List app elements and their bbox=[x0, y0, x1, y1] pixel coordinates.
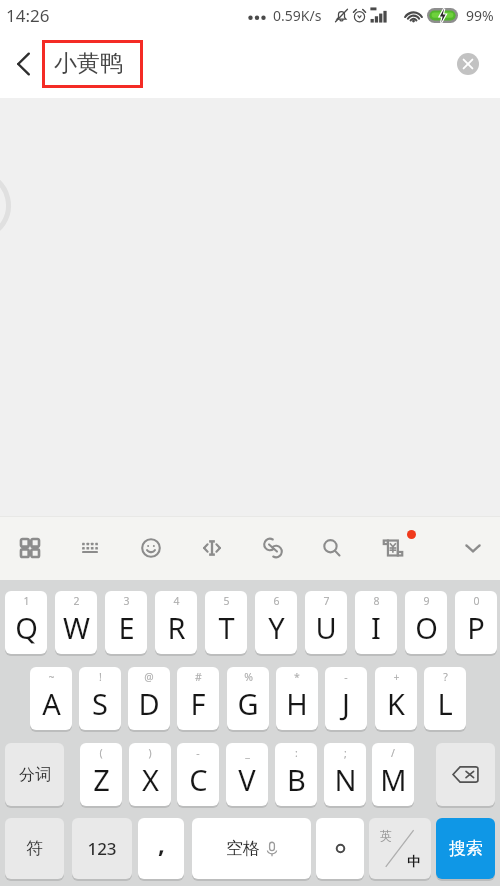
button[interactable]: Translate bbox=[370, 516, 416, 580]
staticText: + bbox=[393, 670, 400, 684]
staticText: * bbox=[294, 670, 300, 684]
button[interactable]: 0 bbox=[455, 591, 497, 654]
button[interactable]: 空格 bbox=[192, 818, 311, 879]
button[interactable]: : bbox=[275, 743, 317, 806]
staticText: E bbox=[118, 608, 135, 647]
staticText: I bbox=[371, 608, 381, 647]
staticText: - bbox=[344, 670, 348, 684]
button[interactable]: 2 bbox=[55, 591, 97, 654]
staticText: ; bbox=[344, 746, 347, 760]
staticText: L bbox=[437, 684, 453, 723]
staticText: 99% bbox=[466, 6, 494, 25]
staticText: % bbox=[244, 670, 253, 684]
button[interactable]: Back bbox=[2, 42, 46, 86]
staticText: O bbox=[415, 608, 438, 647]
button[interactable]: + bbox=[375, 667, 417, 730]
staticText: M bbox=[380, 760, 407, 799]
button[interactable]: 分词 bbox=[5, 743, 64, 806]
staticText: @ bbox=[144, 670, 154, 684]
staticText: , bbox=[158, 827, 165, 860]
staticText: : bbox=[295, 746, 298, 760]
button[interactable]: Switch English Chinese bbox=[369, 818, 431, 879]
staticText: 3 bbox=[123, 594, 130, 608]
staticText: ! bbox=[99, 670, 102, 684]
staticText: T bbox=[218, 608, 235, 647]
button[interactable]: 搜索 bbox=[436, 818, 495, 879]
button[interactable]: Apps bbox=[7, 516, 53, 580]
staticText: V bbox=[238, 760, 256, 799]
button[interactable]: # bbox=[177, 667, 219, 730]
staticText: X bbox=[142, 760, 159, 799]
staticText: 符 bbox=[26, 838, 43, 859]
staticText: 7 bbox=[323, 594, 330, 608]
button[interactable]: * bbox=[276, 667, 318, 730]
staticText: 空格 bbox=[226, 838, 260, 859]
button[interactable]: 3 bbox=[105, 591, 147, 654]
button[interactable]: ) bbox=[129, 743, 171, 806]
staticText: 9 bbox=[423, 594, 430, 608]
staticText: 英 bbox=[380, 828, 392, 843]
button[interactable]: 9 bbox=[405, 591, 447, 654]
staticText: Z bbox=[93, 760, 110, 799]
staticText: C bbox=[189, 760, 208, 799]
staticText: 14:26 bbox=[6, 4, 50, 27]
button[interactable]: - bbox=[325, 667, 367, 730]
button[interactable]: Keyboard layout bbox=[67, 516, 113, 580]
staticText: # bbox=[195, 670, 202, 684]
button[interactable]: 7 bbox=[305, 591, 347, 654]
button[interactable]: ; bbox=[324, 743, 366, 806]
staticText: S bbox=[92, 684, 108, 723]
button[interactable]: 8 bbox=[355, 591, 397, 654]
staticText: _ bbox=[245, 746, 250, 760]
button[interactable]: ? bbox=[424, 667, 466, 730]
button[interactable]: ~ bbox=[30, 667, 72, 730]
button[interactable]: - bbox=[177, 743, 219, 806]
staticText: 2 bbox=[73, 594, 80, 608]
button[interactable]: Text cursor bbox=[189, 516, 235, 580]
staticText: H bbox=[286, 684, 308, 723]
staticText: / bbox=[391, 746, 395, 760]
staticText: Y bbox=[268, 608, 285, 647]
button[interactable]: Comma bbox=[138, 818, 184, 879]
button[interactable]: Clipboard bbox=[250, 516, 296, 580]
staticText: Q bbox=[15, 608, 38, 647]
staticText: W bbox=[63, 608, 90, 647]
button[interactable]: 1 bbox=[5, 591, 47, 654]
button[interactable]: Search bbox=[309, 516, 355, 580]
staticText: 小黄鸭 bbox=[54, 49, 123, 78]
button[interactable]: 123 bbox=[72, 818, 132, 879]
staticText: 8 bbox=[373, 594, 380, 608]
staticText: 分词 bbox=[19, 765, 51, 785]
staticText: F bbox=[190, 684, 206, 723]
button[interactable]: ( bbox=[80, 743, 122, 806]
button[interactable]: / bbox=[372, 743, 414, 806]
button[interactable]: 5 bbox=[205, 591, 247, 654]
button[interactable]: 6 bbox=[255, 591, 297, 654]
button[interactable]: ! bbox=[79, 667, 121, 730]
staticText: U bbox=[315, 608, 337, 647]
button[interactable]: Period bbox=[316, 818, 364, 879]
staticText: 5 bbox=[223, 594, 230, 608]
button[interactable]: Emoji bbox=[128, 516, 174, 580]
staticText: R bbox=[167, 608, 186, 647]
staticText: 123 bbox=[87, 837, 117, 860]
button[interactable]: 小黄鸭 bbox=[42, 40, 143, 88]
button[interactable]: Collapse keyboard bbox=[450, 516, 496, 580]
button[interactable]: 4 bbox=[155, 591, 197, 654]
button[interactable]: _ bbox=[226, 743, 268, 806]
staticText: ? bbox=[443, 670, 448, 684]
button[interactable]: Backspace bbox=[436, 743, 495, 806]
staticText: 中 bbox=[407, 853, 420, 869]
button[interactable]: @ bbox=[128, 667, 170, 730]
staticText: K bbox=[387, 684, 405, 723]
staticText: G bbox=[237, 684, 259, 723]
staticText: B bbox=[287, 760, 306, 799]
button[interactable]: 符 bbox=[5, 818, 64, 879]
button[interactable]: Clear bbox=[448, 44, 488, 84]
staticText: 1 bbox=[23, 594, 30, 608]
staticText: - bbox=[196, 746, 200, 760]
staticText: D bbox=[138, 684, 160, 723]
button[interactable]: % bbox=[227, 667, 269, 730]
staticText: 6 bbox=[273, 594, 280, 608]
staticText: J bbox=[342, 684, 350, 723]
